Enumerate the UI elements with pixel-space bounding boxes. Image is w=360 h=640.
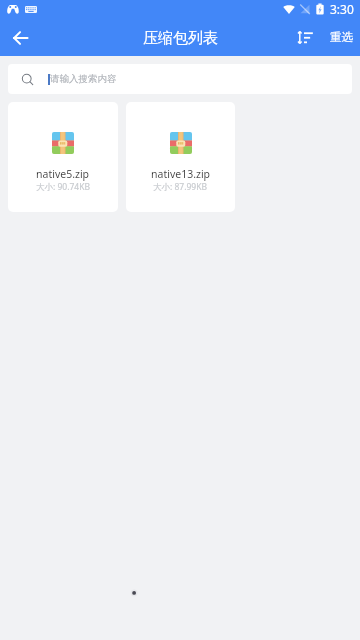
staticText: 重选 — [330, 30, 353, 44]
staticText: 压缩包列表 — [143, 29, 218, 48]
button[interactable]: native5.zip — [8, 102, 118, 212]
staticText: 大小: 90.74KB — [36, 181, 91, 193]
staticText: 3:30 — [330, 1, 354, 17]
staticText: native5.zip — [36, 167, 90, 181]
button[interactable]: native13.zip — [126, 102, 235, 212]
staticText: 请输入搜索内容 — [50, 73, 117, 85]
staticText: 大小: 87.99KB — [153, 181, 208, 193]
staticText: native13.zip — [151, 167, 211, 181]
button[interactable]: 重选 — [329, 24, 360, 52]
button[interactable]: Sort — [296, 24, 329, 52]
button[interactable]: 请输入搜索内容 — [8, 64, 352, 94]
button[interactable]: Back — [0, 24, 40, 52]
